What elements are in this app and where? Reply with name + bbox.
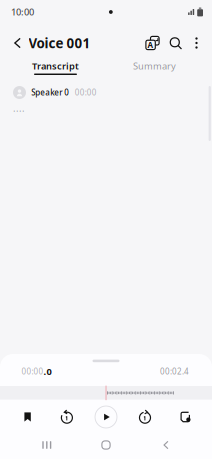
staticText: Speaker 0 <box>31 87 69 98</box>
button[interactable]: More options <box>187 30 206 56</box>
button[interactable]: Home <box>93 435 119 455</box>
button[interactable]: Forward 10 seconds <box>132 405 158 429</box>
button[interactable]: Play <box>93 404 119 430</box>
staticText: Summary <box>133 60 176 72</box>
button[interactable]: Back <box>153 435 179 455</box>
staticText: .0 <box>43 365 51 377</box>
button[interactable]: Bookmark <box>15 405 41 429</box>
button[interactable]: Back <box>6 30 28 56</box>
button[interactable]: Translate <box>141 30 164 56</box>
staticText: Transcript <box>32 60 79 72</box>
staticText: 00:00 <box>75 87 97 98</box>
staticText: Voice 001 <box>28 34 90 52</box>
staticText: A <box>148 40 154 50</box>
staticText: .... <box>13 102 25 114</box>
button[interactable]: Rewind 10 seconds <box>54 405 80 429</box>
button[interactable]: Recent apps <box>34 435 60 455</box>
button[interactable]: Transcript <box>6 59 105 77</box>
staticText: 00:02.4 <box>160 366 189 377</box>
button[interactable]: Search <box>164 30 187 56</box>
staticText: 10:00 <box>11 6 34 18</box>
button[interactable]: Summary <box>105 59 204 77</box>
button[interactable]: Trim <box>172 405 198 429</box>
staticText: 00:00 <box>21 366 43 377</box>
